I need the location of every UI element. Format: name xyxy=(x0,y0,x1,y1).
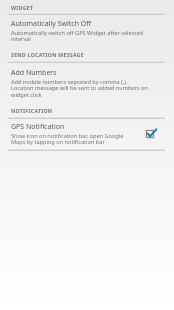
staticText: Automatically switch off GPS Widget afte… xyxy=(11,29,148,43)
staticText: Add Numbers xyxy=(11,68,57,78)
staticText: Add mobile numbers seprated by comma (,)… xyxy=(11,78,148,99)
staticText: NOTIFICATION xyxy=(11,107,53,114)
button[interactable]: GPS Notification checkbox xyxy=(142,124,160,142)
staticText: WIDGET xyxy=(11,4,34,11)
button[interactable]: Add Numbers xyxy=(0,64,174,100)
button[interactable]: GPS Notification xyxy=(0,120,174,150)
staticText: GPS Notification xyxy=(11,122,65,132)
staticText: Show icon on notification bar, open Goog… xyxy=(11,132,131,146)
staticText: SEND LOCATION MESSAGE xyxy=(11,51,84,58)
staticText: Automatically Switch Off xyxy=(11,19,92,29)
button[interactable]: Automatically Switch Off xyxy=(0,16,174,45)
